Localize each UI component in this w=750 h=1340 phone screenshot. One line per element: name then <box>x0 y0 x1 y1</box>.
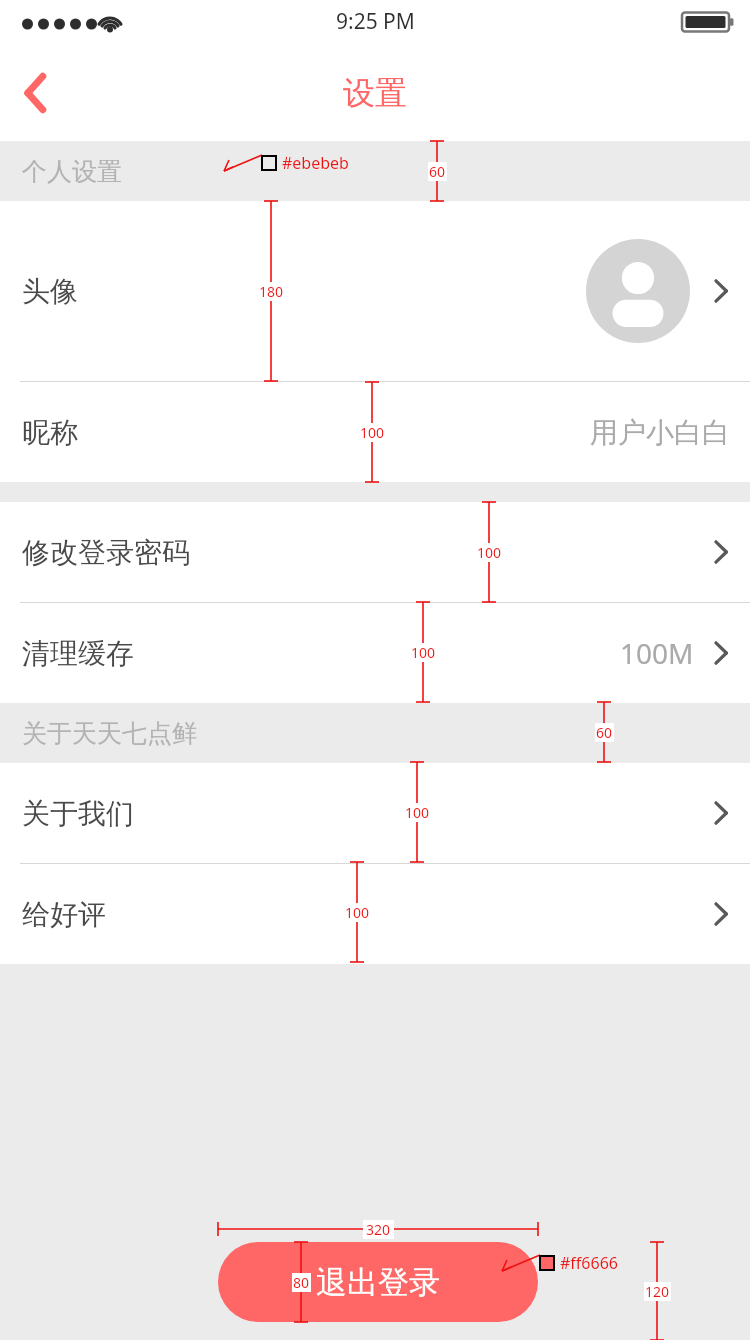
button[interactable]: 修改登录密码 <box>0 502 750 602</box>
staticText: 设置 <box>343 73 407 113</box>
staticText: 修改登录密码 <box>22 535 190 570</box>
button[interactable]: 头像 <box>0 201 750 381</box>
staticText: 180 <box>259 282 284 301</box>
staticText: 清理缓存 <box>22 636 134 671</box>
staticText: 昵称 <box>22 415 78 450</box>
staticText: 60 <box>429 162 446 181</box>
button[interactable]: 退出登录 <box>218 1242 538 1322</box>
staticText: 100 <box>345 903 370 922</box>
button[interactable]: Back <box>0 57 72 129</box>
button[interactable]: 清理缓存 <box>0 603 750 703</box>
staticText: 100 <box>411 643 436 662</box>
staticText: 个人设置 <box>22 156 122 187</box>
staticText: 头像 <box>22 274 78 309</box>
staticText: 给好评 <box>22 897 106 932</box>
staticText: 退出登录 <box>316 1263 440 1302</box>
staticText: 100 <box>477 543 502 562</box>
staticText: 80 <box>293 1273 310 1292</box>
button[interactable]: 昵称 <box>0 382 750 482</box>
staticText: 用户小白白 <box>590 415 730 450</box>
staticText: #ff6666 <box>560 1252 618 1274</box>
staticText: 关于天天七点鲜 <box>22 718 197 749</box>
staticText: 320 <box>366 1220 391 1239</box>
staticText: 100 <box>405 803 430 822</box>
staticText: 9:25 PM <box>336 7 415 36</box>
staticText: #ebebeb <box>282 152 349 174</box>
staticText: 100M <box>620 634 694 672</box>
staticText: 100 <box>360 423 385 442</box>
staticText: 120 <box>645 1282 670 1301</box>
button[interactable]: 关于我们 <box>0 763 750 863</box>
staticText: 60 <box>596 723 613 742</box>
staticText: 关于我们 <box>22 796 134 831</box>
button[interactable]: 给好评 <box>0 864 750 964</box>
